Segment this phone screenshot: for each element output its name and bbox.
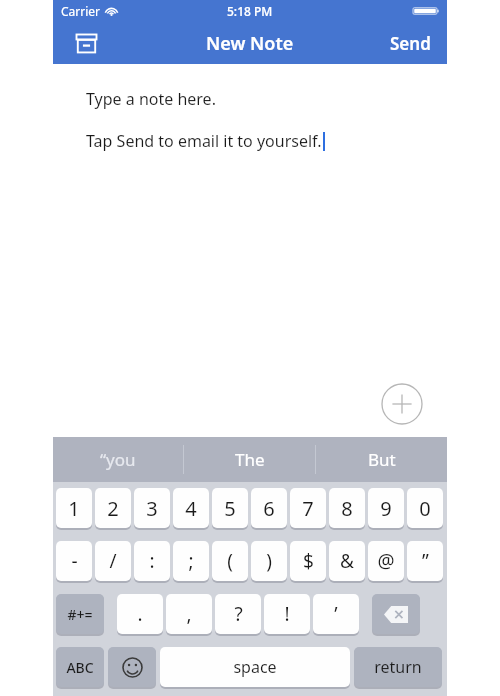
staticText: :: [149, 548, 155, 574]
button[interactable]: ABC: [56, 647, 104, 689]
button[interactable]: @: [368, 541, 404, 583]
button[interactable]: 8: [329, 488, 365, 530]
staticText: @: [377, 548, 395, 574]
button[interactable]: ?: [215, 594, 261, 636]
button[interactable]: 0: [407, 488, 443, 530]
button[interactable]: Send: [386, 26, 435, 61]
staticText: -: [71, 548, 78, 574]
button[interactable]: return: [354, 647, 442, 689]
button[interactable]: “you: [53, 437, 183, 482]
button[interactable]: 1: [56, 488, 92, 530]
button[interactable]: $: [290, 541, 326, 583]
staticText: ;: [188, 548, 194, 574]
staticText: space: [233, 656, 277, 678]
staticText: 0: [419, 495, 431, 522]
staticText: &: [340, 548, 354, 574]
button[interactable]: ,: [166, 594, 212, 636]
staticText: New Note: [206, 31, 294, 56]
staticText: 8: [341, 495, 353, 522]
staticText: .: [137, 601, 143, 627]
staticText: 2: [107, 495, 119, 522]
button[interactable]: 9: [368, 488, 404, 530]
staticText: !: [284, 601, 290, 627]
staticText: ”: [422, 548, 429, 574]
button[interactable]: But: [316, 437, 447, 482]
button[interactable]: The: [184, 437, 315, 482]
button[interactable]: Backspace: [372, 594, 420, 636]
staticText: ’: [334, 601, 338, 627]
button[interactable]: 2: [95, 488, 131, 530]
staticText: But: [368, 448, 396, 471]
staticText: 5:18 PM: [227, 3, 273, 19]
button[interactable]: &: [329, 541, 365, 583]
staticText: Carrier: [61, 3, 101, 19]
staticText: $: [303, 548, 314, 574]
staticText: “you: [100, 448, 136, 471]
button[interactable]: #+=: [56, 594, 104, 636]
staticText: 1: [68, 495, 80, 522]
button[interactable]: 5: [212, 488, 248, 530]
button[interactable]: Archive: [69, 26, 103, 60]
staticText: #+=: [67, 605, 93, 624]
staticText: Tap Send to email it to yourself.: [86, 130, 322, 152]
button[interactable]: !: [264, 594, 310, 636]
staticText: The: [235, 448, 265, 471]
button[interactable]: Add attachment: [381, 383, 423, 425]
staticText: ABC: [66, 658, 94, 677]
button[interactable]: 4: [173, 488, 209, 530]
button[interactable]: 7: [290, 488, 326, 530]
button[interactable]: ”: [407, 541, 443, 583]
staticText: Type a note here.: [86, 88, 216, 110]
button[interactable]: ): [251, 541, 287, 583]
staticText: return: [374, 656, 422, 678]
staticText: ): [266, 548, 272, 574]
button[interactable]: :: [134, 541, 170, 583]
button[interactable]: 3: [134, 488, 170, 530]
staticText: 9: [380, 495, 392, 522]
button[interactable]: (: [212, 541, 248, 583]
button[interactable]: /: [95, 541, 131, 583]
staticText: 4: [185, 495, 197, 522]
button[interactable]: -: [56, 541, 92, 583]
staticText: (: [227, 548, 233, 574]
button[interactable]: Emoji: [108, 647, 156, 689]
staticText: ?: [234, 601, 243, 627]
staticText: /: [109, 548, 117, 574]
button[interactable]: space: [160, 647, 350, 689]
button[interactable]: .: [117, 594, 163, 636]
button[interactable]: ’: [313, 594, 359, 636]
staticText: ,: [186, 601, 192, 627]
staticText: 6: [263, 495, 275, 522]
button[interactable]: 6: [251, 488, 287, 530]
staticText: 5: [224, 495, 236, 522]
staticText: 3: [146, 495, 158, 522]
button[interactable]: ;: [173, 541, 209, 583]
staticText: Send: [390, 32, 431, 55]
staticText: 7: [302, 495, 314, 522]
